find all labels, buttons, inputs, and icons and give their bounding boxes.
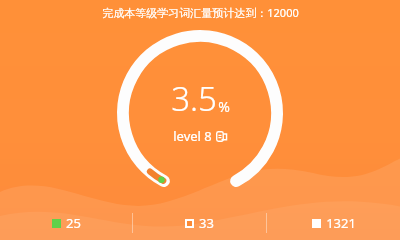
staticText: %: [218, 97, 230, 116]
staticText: level 8: [173, 127, 212, 145]
staticText: 完成本等级学习词汇量预计达到：12000: [102, 5, 299, 20]
staticText: 3.5: [171, 76, 217, 121]
staticText: 1321: [326, 214, 356, 232]
button[interactable]: 33: [133, 206, 266, 240]
staticText: 25: [66, 214, 81, 232]
staticText: 33: [199, 214, 214, 232]
button[interactable]: 1321: [267, 206, 400, 240]
other: Level details: [216, 131, 227, 142]
button[interactable]: level 8: [171, 126, 229, 146]
button[interactable]: 25: [0, 206, 132, 240]
